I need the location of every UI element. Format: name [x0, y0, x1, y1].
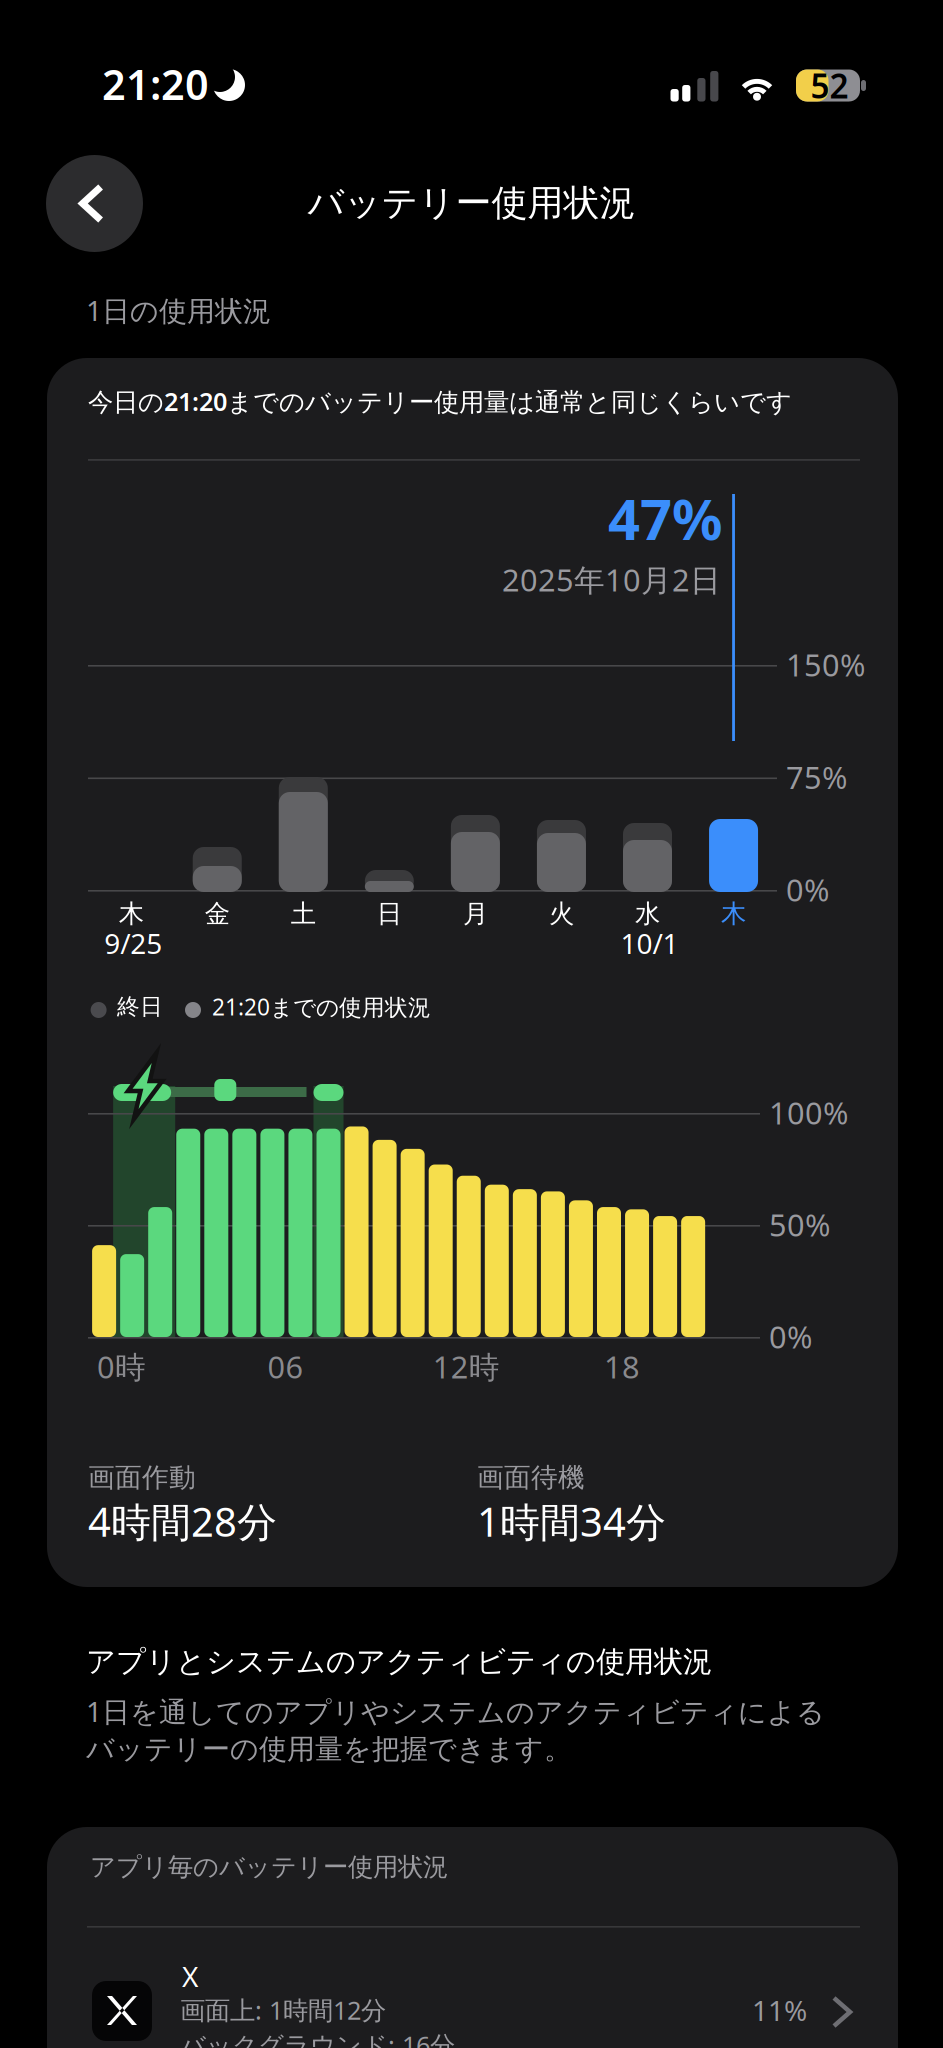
staticText: 0時 [97, 1346, 146, 1387]
staticText: 日 [377, 898, 402, 929]
staticText: 21:20までの使用状況 [212, 992, 431, 1022]
staticText: 75% [786, 757, 847, 797]
staticText: 今日の21:20までのバッテリー使用量は通常と同じくらいです [88, 384, 792, 418]
staticText: アプリとシステムのアクティビティの使用状況 [86, 1644, 712, 1680]
staticText: 4時間28分 [88, 1495, 277, 1548]
staticText: 画面上: 1時間12分 [180, 1993, 386, 2027]
staticText: 0% [786, 869, 829, 910]
staticText: バッテリー使用状況 [307, 181, 635, 225]
staticText: 06 [267, 1346, 303, 1387]
staticText: 10/1 [620, 925, 678, 962]
staticText: バッテリーの使用量を把握できます。 [86, 1732, 572, 1766]
staticText: 水 [635, 898, 660, 929]
staticText: 火 [549, 898, 574, 929]
staticText: 2025年10月2日 [502, 559, 721, 600]
staticText: 終日 [117, 993, 163, 1021]
staticText: 1日を通してのアプリやシステムのアクティビティによる [86, 1693, 825, 1730]
staticText: 100% [769, 1092, 848, 1133]
button[interactable]: X [47, 1955, 898, 2048]
staticText: 画面待機 [477, 1461, 585, 1494]
staticText: 画面作動 [88, 1461, 196, 1494]
staticText: 11% [752, 1992, 807, 2029]
staticText: アプリ毎のバッテリー使用状況 [90, 1852, 448, 1883]
staticText: 18 [604, 1346, 640, 1387]
button[interactable]: 戻る [46, 155, 143, 252]
staticText: 木 [119, 898, 144, 929]
staticText: 1時間34分 [477, 1495, 666, 1548]
staticText: 52 [810, 63, 848, 108]
staticText: X [182, 1958, 198, 1995]
staticText: 月 [463, 898, 488, 929]
staticText: 金 [205, 898, 230, 929]
staticText: 50% [769, 1204, 830, 1245]
staticText: バックグラウンド: 16分 [180, 2028, 455, 2048]
staticText: 土 [291, 898, 316, 929]
staticText: 0% [769, 1316, 812, 1357]
staticText: 47% [608, 481, 723, 556]
staticText: 1日の使用状況 [86, 292, 271, 329]
staticText: 12時 [433, 1346, 500, 1387]
staticText: 150% [786, 644, 865, 685]
staticText: 21:20 [102, 56, 209, 111]
staticText: 木 [721, 898, 746, 929]
staticText: 9/25 [104, 925, 162, 962]
